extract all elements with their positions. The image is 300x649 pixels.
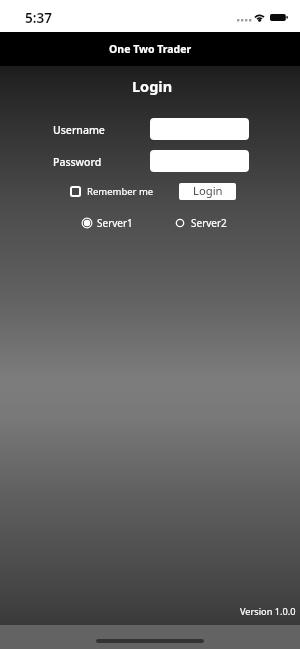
staticText: 5:37	[25, 9, 52, 27]
staticText: Server2	[191, 216, 227, 230]
button[interactable]: Username	[150, 118, 249, 140]
button[interactable]: Remember me	[70, 183, 154, 200]
staticText: Login	[193, 183, 223, 198]
staticText: Remember me	[87, 185, 154, 198]
button[interactable]: Login	[179, 183, 236, 200]
staticText: One Two Trader	[109, 42, 192, 56]
button[interactable]: Server1	[80, 216, 133, 230]
staticText: Username	[53, 123, 105, 137]
button[interactable]: Server2	[173, 216, 227, 230]
staticText: Server1	[97, 216, 133, 230]
staticText: Password	[53, 155, 102, 169]
staticText: Login	[132, 76, 173, 96]
staticText: Version 1.0.0	[240, 605, 296, 618]
button[interactable]: Password	[150, 150, 249, 172]
